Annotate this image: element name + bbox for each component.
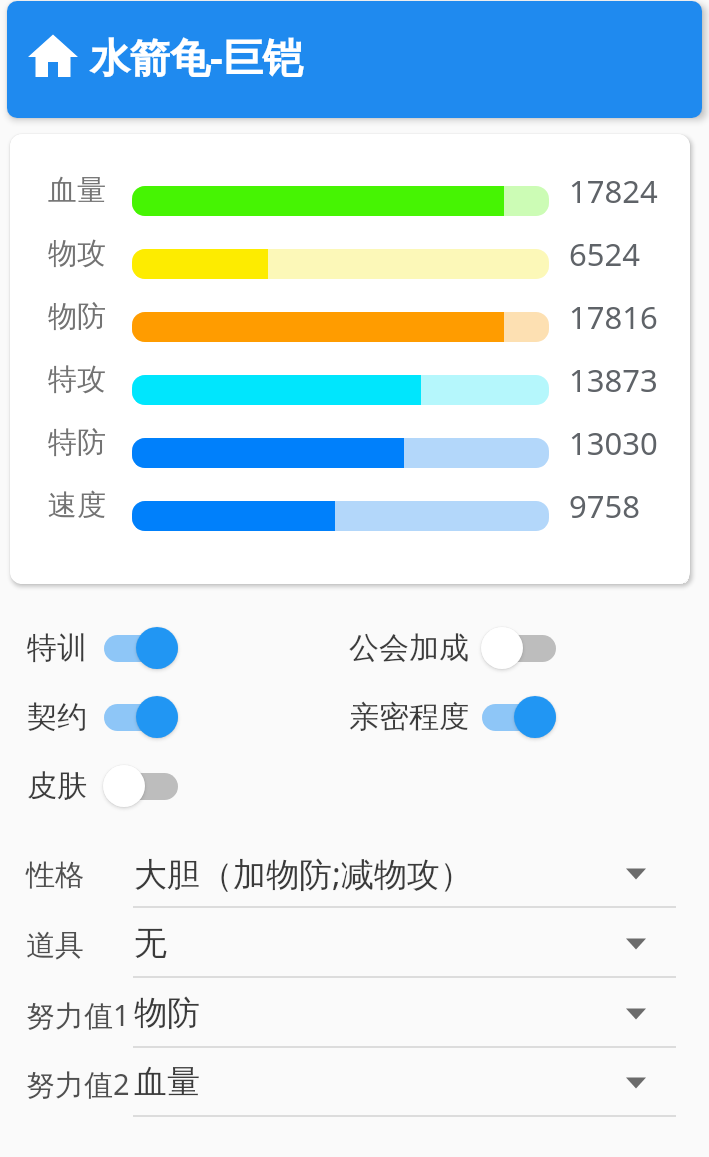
button[interactable] xyxy=(103,696,178,738)
staticText: 13030 xyxy=(569,422,658,464)
staticText: 血量 xyxy=(134,1061,200,1103)
staticText: 物防 xyxy=(48,298,106,335)
staticText: 13873 xyxy=(569,359,658,401)
button[interactable] xyxy=(481,696,556,738)
button[interactable]: 努力值1 xyxy=(0,978,709,1048)
button[interactable]: 道具 xyxy=(0,908,709,978)
staticText: 努力值1 xyxy=(26,995,130,1035)
staticText: 性格 xyxy=(26,857,84,894)
staticText: 物攻 xyxy=(48,235,106,272)
staticText: 大胆（加物防;减物攻） xyxy=(134,851,473,896)
staticText: 17816 xyxy=(569,296,658,338)
button[interactable]: 努力值2 xyxy=(0,1047,709,1117)
staticText: 契约 xyxy=(27,698,87,736)
staticText: 9758 xyxy=(569,485,640,527)
staticText: 特攻 xyxy=(48,361,106,398)
staticText: 17824 xyxy=(569,170,658,212)
staticText: 速度 xyxy=(48,487,106,524)
button[interactable]: 性格 xyxy=(0,838,709,908)
staticText: 皮肤 xyxy=(27,767,87,805)
staticText: 特训 xyxy=(27,629,87,667)
staticText: 水箭龟-巨铠 xyxy=(90,29,303,84)
staticText: 无 xyxy=(134,922,167,964)
button[interactable] xyxy=(103,765,178,807)
button[interactable] xyxy=(103,627,178,669)
staticText: 物防 xyxy=(134,992,200,1034)
staticText: 公会加成 xyxy=(349,629,469,667)
staticText: 努力值2 xyxy=(26,1064,130,1104)
button[interactable]: 水箭龟-巨铠 xyxy=(7,1,702,118)
staticText: 亲密程度 xyxy=(349,698,469,736)
staticText: 6524 xyxy=(569,233,640,275)
staticText: 特防 xyxy=(48,424,106,461)
button[interactable] xyxy=(481,627,556,669)
staticText: 血量 xyxy=(48,172,106,209)
staticText: 道具 xyxy=(26,927,84,964)
